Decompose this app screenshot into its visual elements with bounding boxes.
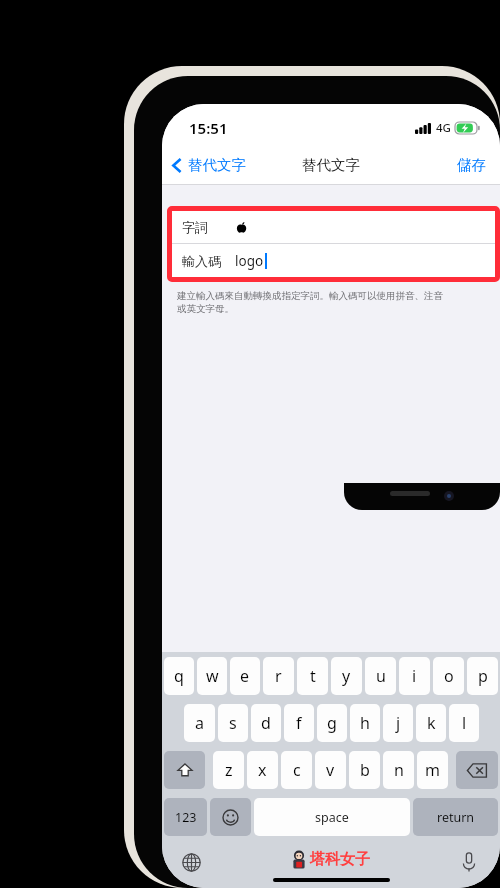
staticText: 字詞 xyxy=(182,219,208,235)
button[interactable]: z xyxy=(213,751,244,789)
staticText: p xyxy=(478,665,488,687)
staticText: r xyxy=(275,665,282,687)
staticText: logo xyxy=(235,252,264,270)
button[interactable]: k xyxy=(416,704,446,742)
staticText: 替代文字 xyxy=(188,156,246,174)
staticText: a xyxy=(195,712,204,734)
staticText: n xyxy=(394,759,404,781)
button[interactable]: 字詞 xyxy=(172,211,495,243)
staticText: v xyxy=(326,759,335,781)
button[interactable]: 123 xyxy=(164,798,207,836)
button[interactable]: i xyxy=(399,657,430,695)
staticText: g xyxy=(327,712,337,734)
button[interactable]: n xyxy=(383,751,414,789)
button[interactable]: v xyxy=(315,751,346,789)
staticText: 建立輸入碼來自動轉換成指定字詞。輸入碼可以使用拼音、注音 或英文字母。 xyxy=(177,290,443,314)
button[interactable]: 儲存 xyxy=(457,156,486,174)
staticText: 塔科女子 xyxy=(310,850,370,869)
button[interactable]: d xyxy=(251,704,281,742)
button[interactable]: 替代文字 xyxy=(172,156,246,174)
button[interactable]: a xyxy=(184,704,215,742)
staticText: e xyxy=(240,665,250,687)
button[interactable]: f xyxy=(284,704,314,742)
button[interactable]: 輸入碼 xyxy=(172,244,495,277)
staticText: f xyxy=(296,712,302,734)
button[interactable]: e xyxy=(230,657,260,695)
button[interactable]: c xyxy=(281,751,312,789)
button[interactable]: o xyxy=(433,657,464,695)
staticText: k xyxy=(427,712,436,734)
staticText: h xyxy=(360,712,370,734)
staticText: 4G xyxy=(436,120,451,136)
button[interactable]: m xyxy=(417,751,448,789)
staticText: o xyxy=(444,665,454,687)
staticText: space xyxy=(315,809,349,826)
button[interactable]: Backspace xyxy=(456,751,498,789)
staticText: c xyxy=(293,759,301,781)
button[interactable]: Shift xyxy=(164,751,205,789)
button[interactable]: q xyxy=(164,657,194,695)
button[interactable]: x xyxy=(247,751,278,789)
button[interactable]: t xyxy=(297,657,328,695)
button[interactable]: g xyxy=(317,704,347,742)
staticText: l xyxy=(462,712,467,734)
button[interactable]: w xyxy=(197,657,227,695)
staticText: w xyxy=(206,665,219,687)
button[interactable]: j xyxy=(383,704,413,742)
staticText: y xyxy=(342,665,351,687)
button[interactable]: space xyxy=(254,798,410,836)
button[interactable]: y xyxy=(331,657,362,695)
staticText: j xyxy=(396,712,401,734)
button[interactable]: h xyxy=(350,704,380,742)
staticText: 15:51 xyxy=(189,118,228,138)
staticText: q xyxy=(174,665,184,687)
staticText: x xyxy=(258,759,267,781)
button[interactable]: return xyxy=(413,798,498,836)
button[interactable]: r xyxy=(263,657,294,695)
staticText: t xyxy=(310,665,316,687)
button[interactable]: u xyxy=(365,657,396,695)
staticText: return xyxy=(437,809,475,826)
staticText: i xyxy=(412,665,417,687)
button[interactable]: l xyxy=(449,704,479,742)
button[interactable]: b xyxy=(349,751,380,789)
staticText: 輸入碼 xyxy=(182,253,221,269)
staticText: 123 xyxy=(175,809,197,826)
button[interactable]: Change keyboard xyxy=(176,847,206,877)
staticText: b xyxy=(360,759,370,781)
staticText: s xyxy=(229,712,237,734)
staticText: d xyxy=(261,712,271,734)
staticText: u xyxy=(376,665,386,687)
button[interactable]: s xyxy=(218,704,248,742)
button[interactable]: p xyxy=(467,657,498,695)
staticText: m xyxy=(425,759,440,781)
button[interactable]: Emoji xyxy=(210,798,251,836)
staticText: z xyxy=(225,759,233,781)
staticText: 替代文字 xyxy=(302,156,360,174)
button[interactable]: Dictation xyxy=(454,847,484,877)
